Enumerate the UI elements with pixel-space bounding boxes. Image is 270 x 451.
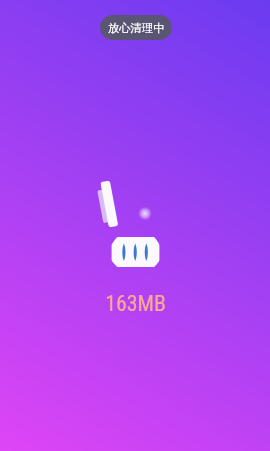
button[interactable]: 放心清理中	[100, 15, 172, 40]
button[interactable]: 163MB	[105, 291, 166, 317]
other: Cleaning animation	[0, 0, 270, 451]
staticText: 放心清理中	[108, 21, 165, 35]
staticText: 163MB	[105, 291, 166, 317]
